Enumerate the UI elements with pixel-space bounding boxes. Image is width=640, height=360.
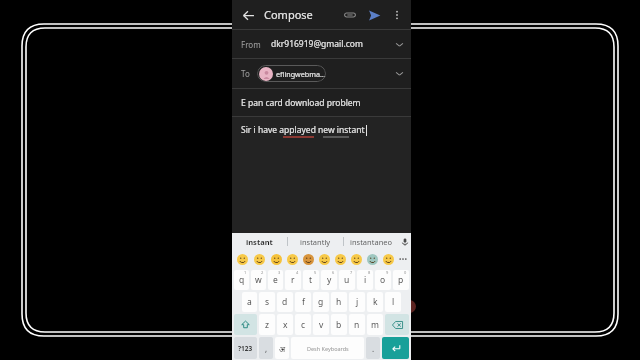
button[interactable]: Emoji	[234, 250, 251, 268]
staticText: i	[364, 274, 367, 286]
staticText: 6	[332, 270, 335, 275]
staticText: instantly	[300, 237, 331, 247]
staticText: ,	[265, 343, 268, 354]
button[interactable]: More emoji	[396, 250, 409, 268]
button[interactable]: .	[366, 337, 380, 359]
button[interactable]: Emoji	[348, 250, 364, 268]
button[interactable]: 5	[303, 270, 319, 290]
button[interactable]: n	[349, 314, 365, 335]
button[interactable]: Space	[291, 337, 364, 359]
button[interactable]: instantly	[288, 233, 343, 250]
button[interactable]: More options	[386, 4, 408, 26]
staticText: k	[373, 296, 378, 308]
button[interactable]: Emoji	[300, 250, 316, 268]
staticText: a	[247, 296, 252, 308]
button[interactable]: 1	[234, 270, 249, 290]
button[interactable]: Switch language	[275, 337, 289, 359]
staticText: Desh Keyboards	[307, 345, 349, 352]
button[interactable]: Emoji	[251, 250, 268, 268]
button[interactable]: s	[259, 292, 275, 312]
button[interactable]: a	[242, 292, 257, 312]
button[interactable]: 8	[357, 270, 373, 290]
button[interactable]: 6	[321, 270, 337, 290]
button[interactable]: v	[313, 314, 329, 335]
staticText: From	[241, 39, 261, 50]
staticText: ?123	[238, 344, 253, 353]
staticText: t	[309, 274, 313, 286]
staticText: c	[301, 319, 306, 331]
button[interactable]: Emoji	[268, 250, 284, 268]
button[interactable]: Symbols	[234, 337, 257, 359]
staticText: n	[354, 319, 360, 331]
button[interactable]: c	[295, 314, 311, 335]
staticText: e	[273, 274, 278, 286]
staticText: eflingwebmanager@incometax.g…	[276, 69, 326, 79]
button[interactable]: 3	[268, 270, 283, 290]
staticText: m	[371, 319, 379, 331]
staticText: v	[319, 319, 324, 331]
staticText: .	[372, 343, 375, 354]
staticText: 2	[261, 270, 264, 275]
staticText: 9	[386, 270, 389, 275]
button[interactable]: l	[385, 292, 401, 312]
button[interactable]: Emoji	[332, 250, 348, 268]
button[interactable]: j	[349, 292, 365, 312]
button[interactable]: E pan card download problem	[232, 89, 411, 116]
button[interactable]: To	[232, 59, 411, 88]
staticText: d	[282, 296, 288, 308]
button[interactable]: Voice input	[399, 233, 411, 250]
button[interactable]: instant	[232, 233, 287, 250]
staticText: h	[336, 296, 342, 308]
staticText: g	[318, 296, 324, 308]
button[interactable]: h	[331, 292, 347, 312]
staticText: 4	[296, 270, 299, 275]
staticText: instantaneo	[350, 237, 393, 247]
button[interactable]: Enter	[382, 337, 409, 359]
button[interactable]: Emoji	[364, 250, 380, 268]
staticText: u	[344, 274, 350, 286]
button[interactable]: z	[259, 314, 275, 335]
staticText: z	[265, 319, 269, 331]
button[interactable]: x	[277, 314, 293, 335]
button[interactable]: g	[313, 292, 329, 312]
button[interactable]: Emoji	[316, 250, 332, 268]
button[interactable]: ,	[259, 337, 273, 359]
button[interactable]: Sir i have applayed new instant	[232, 117, 411, 233]
staticText: y	[327, 274, 332, 286]
staticText: 7	[350, 270, 353, 275]
staticText: f	[302, 296, 305, 308]
staticText: s	[265, 296, 270, 308]
staticText: dkr916919@gmail.com	[271, 38, 363, 50]
button[interactable]: Emoji	[284, 250, 300, 268]
button[interactable]: Shift	[234, 314, 257, 335]
staticText: p	[398, 274, 404, 286]
button[interactable]: Attach file	[339, 4, 361, 26]
button[interactable]: 2	[251, 270, 266, 290]
button[interactable]: 4	[285, 270, 301, 290]
button[interactable]: From	[232, 30, 411, 58]
staticText: b	[336, 319, 342, 331]
staticText: अ	[279, 343, 286, 354]
button[interactable]: Backspace	[385, 314, 409, 335]
staticText: 8	[368, 270, 371, 275]
staticText: j	[356, 296, 359, 308]
staticText: o	[380, 274, 386, 286]
button[interactable]: Emoji	[380, 250, 396, 268]
staticText: 5	[314, 270, 317, 275]
button[interactable]: 0	[393, 270, 409, 290]
staticText: Compose	[264, 7, 313, 22]
button[interactable]: d	[277, 292, 293, 312]
button[interactable]: k	[367, 292, 383, 312]
staticText: w	[255, 274, 262, 286]
button[interactable]: Back	[236, 3, 260, 27]
button[interactable]: 7	[339, 270, 355, 290]
staticText: To	[241, 68, 250, 79]
button[interactable]: b	[331, 314, 347, 335]
button[interactable]: 9	[375, 270, 391, 290]
button[interactable]: Send	[363, 4, 385, 26]
button[interactable]: f	[295, 292, 311, 312]
button[interactable]: instantaneo	[344, 233, 399, 250]
staticText: 0	[404, 270, 407, 275]
button[interactable]: m	[367, 314, 383, 335]
staticText: 3	[278, 270, 281, 275]
